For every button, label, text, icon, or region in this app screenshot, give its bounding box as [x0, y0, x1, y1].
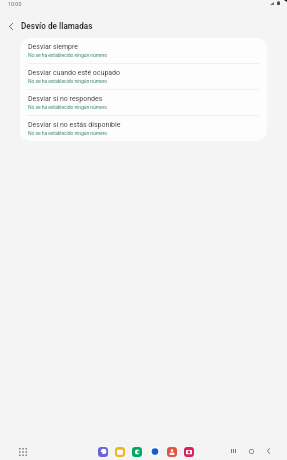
staticText: No se ha establecido ningún número	[28, 52, 107, 58]
staticText: Desviar cuando esté ocupado	[28, 69, 121, 77]
button[interactable]: Desviar si no respondes	[20, 90, 267, 115]
staticText: Desvío de llamadas	[21, 21, 93, 31]
button[interactable]: Phone	[132, 447, 142, 457]
button[interactable]: Desviar siempre	[20, 38, 267, 63]
button[interactable]: Messages	[150, 447, 160, 457]
staticText: No se ha establecido ningún número	[28, 78, 107, 84]
staticText: Desviar si no respondes	[28, 95, 103, 103]
button[interactable]: Home	[244, 444, 258, 458]
staticText: No se ha establecido ningún número	[28, 104, 107, 110]
button[interactable]: Recents	[226, 444, 240, 458]
button[interactable]: Apps	[13, 442, 33, 460]
staticText: 10:00	[8, 1, 22, 7]
staticText: No se ha establecido ningún número	[28, 130, 107, 136]
button[interactable]: Internet	[98, 447, 108, 457]
button[interactable]: Contacts	[167, 447, 177, 457]
staticText: Desviar si no estás disponible	[28, 121, 121, 129]
button[interactable]: Back	[261, 444, 275, 458]
button[interactable]: Camera	[184, 447, 194, 457]
button[interactable]: Desviar si no estás disponible	[20, 116, 267, 141]
staticText: Desviar siempre	[28, 43, 79, 51]
button[interactable]: Back	[1, 16, 21, 36]
button[interactable]: My Files	[115, 447, 125, 457]
button[interactable]: Desviar cuando esté ocupado	[20, 64, 267, 89]
